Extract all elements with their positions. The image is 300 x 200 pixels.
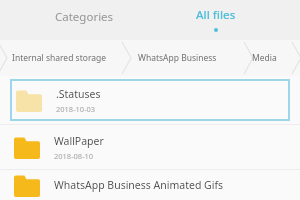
staticText: .Statuses: [56, 87, 101, 101]
staticText: WhatsApp Business: [138, 52, 217, 64]
button[interactable]: Media: [236, 40, 292, 76]
staticText: Media: [252, 52, 277, 64]
button[interactable]: Folder: [10, 79, 290, 121]
other: Folder: [14, 135, 40, 159]
staticText: WallPaper: [54, 134, 104, 148]
staticText: Categories: [55, 9, 114, 25]
staticText: 2018-08-10: [54, 151, 94, 161]
staticText: 2018-10-03: [56, 104, 96, 114]
button[interactable]: Folder: [0, 125, 300, 169]
other: Folder: [14, 173, 40, 197]
button[interactable]: Categories: [18, 0, 150, 40]
button[interactable]: Folder: [0, 170, 300, 200]
other: Folder: [16, 88, 42, 112]
staticText: WhatsApp Business Animated Gifs: [54, 178, 224, 192]
staticText: Internal shared storage: [12, 52, 107, 64]
button[interactable]: WhatsApp Business: [118, 40, 236, 76]
staticText: All files: [196, 7, 236, 23]
button[interactable]: Internal shared storage: [0, 40, 118, 76]
button[interactable]: All files: [150, 0, 282, 40]
